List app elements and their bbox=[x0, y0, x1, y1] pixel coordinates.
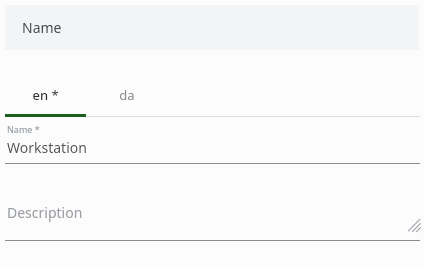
staticText: en * bbox=[32, 86, 59, 104]
staticText: da bbox=[119, 86, 135, 104]
button[interactable]: Name * bbox=[0, 120, 424, 164]
staticText: Workstation bbox=[7, 138, 87, 157]
button[interactable]: Resize description field bbox=[407, 218, 421, 232]
button[interactable]: Description bbox=[0, 190, 424, 240]
staticText: Name bbox=[22, 18, 62, 37]
button[interactable]: Name bbox=[5, 5, 419, 50]
button[interactable]: en * bbox=[5, 74, 86, 115]
staticText: Description bbox=[7, 203, 83, 222]
staticText: Name * bbox=[7, 123, 40, 135]
button[interactable]: da bbox=[86, 74, 167, 115]
